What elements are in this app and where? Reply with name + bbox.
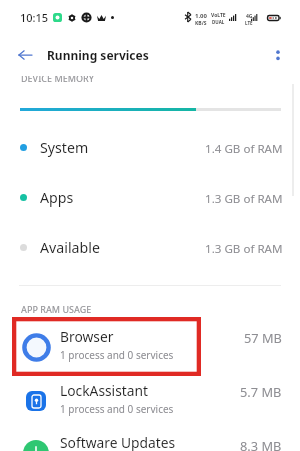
staticText: APP RAM USAGE — [21, 303, 92, 315]
staticText: 5.7 MB — [240, 383, 282, 400]
staticText: 57 MB — [244, 329, 282, 346]
button[interactable]: Navigate up — [11, 41, 39, 69]
staticText: LockAssistant — [60, 381, 148, 400]
staticText: DEVICE MEMORY — [21, 76, 94, 82]
staticText: Available — [40, 238, 100, 257]
staticText: 1.00 — [195, 12, 207, 20]
staticText: System — [40, 138, 89, 157]
staticText: VoLTE — [211, 12, 226, 19]
staticText: 1 process and 0 services — [60, 402, 174, 416]
staticText: 4G — [246, 13, 253, 20]
staticText: Browser — [60, 327, 114, 346]
button[interactable]: Software Updates — [0, 428, 300, 451]
staticText: Software Updates — [60, 433, 176, 451]
button[interactable]: Available — [0, 235, 300, 259]
staticText: KB/S — [195, 20, 207, 27]
staticText: 1.4 GB of RAM — [205, 141, 283, 157]
staticText: 1 process and 0 services — [60, 348, 174, 362]
staticText: 1.3 GB of RAM — [205, 191, 283, 207]
button[interactable]: More options — [266, 44, 290, 68]
staticText: 1.3 GB of RAM — [205, 241, 283, 257]
staticText: LTE — [245, 20, 253, 26]
staticText: 8.3 MB — [240, 437, 282, 451]
button[interactable]: Browser — [0, 320, 300, 374]
staticText: DUAL — [212, 19, 225, 25]
staticText: 10:15 — [20, 10, 49, 25]
button[interactable]: Apps — [0, 185, 300, 209]
button[interactable]: System — [0, 135, 300, 159]
staticText: Running services — [47, 47, 149, 63]
staticText: Apps — [40, 188, 74, 207]
button[interactable]: LockAssistant — [0, 374, 300, 428]
